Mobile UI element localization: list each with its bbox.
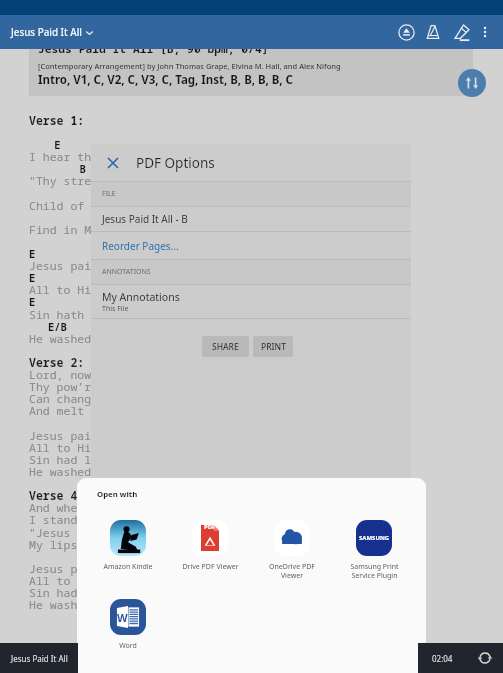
button[interactable]: Metronome <box>421 20 445 44</box>
staticText: And melt the heart of stone. <box>29 403 223 419</box>
staticText: Sin had left a crimson stain, <box>29 452 230 468</box>
staticText: Jesus paid it all, <box>29 561 154 577</box>
staticText: Intro, V1, C, V2, C, V3, C, Tag, Inst, B… <box>38 72 293 88</box>
staticText: Find in Me thine all in all." <box>29 222 230 238</box>
staticText: SAMSUNG <box>359 534 390 542</box>
button[interactable]: Jesus Paid It All <box>0 643 78 673</box>
staticText: PDF Options <box>136 154 215 172</box>
staticText: Jesus paid it all, <box>29 258 154 274</box>
staticText: I stand in Him complete, <box>29 512 195 528</box>
button[interactable]: PRINT <box>253 336 293 357</box>
staticText: Child of weakness, watch and pray, <box>29 198 264 214</box>
staticText: [Contemporary Arrangement] by John Thoma… <box>38 61 341 71</box>
staticText: Verse 4: <box>29 488 85 504</box>
button[interactable]: Capo <box>394 20 418 44</box>
staticText: Verse 2: <box>29 355 85 371</box>
staticText: He washed it white as snow. <box>29 331 216 347</box>
staticText: Word <box>119 641 137 651</box>
staticText: 02:04 <box>432 653 453 664</box>
staticText: I hear the Savior say, <box>29 149 181 165</box>
staticText: FILE <box>102 189 116 199</box>
staticText: Jesus Paid It All <box>11 653 68 664</box>
staticText: Can change the leper’s spots <box>29 391 223 407</box>
staticText: This File <box>102 304 129 314</box>
staticText: OneDrive PDF Viewer <box>269 562 315 580</box>
staticText: Jesus Paid It All - B <box>102 212 188 226</box>
button[interactable]: Jesus Paid It All <box>8 20 97 45</box>
staticText: E/B <box>29 320 67 334</box>
staticText: ANNOTATIONS <box>102 267 151 277</box>
staticText: My lips shall still repeat. <box>29 537 216 553</box>
button[interactable]: My Annotations <box>91 285 411 318</box>
staticText: PRINT <box>261 341 286 353</box>
button[interactable]: Close <box>102 152 124 174</box>
button[interactable]: PDF <box>169 520 251 572</box>
staticText: W <box>117 610 128 625</box>
button[interactable]: SAMSUNG <box>333 520 415 580</box>
staticText: All to Him I owe; <box>29 573 147 589</box>
staticText: Drive PDF Viewer <box>182 562 239 572</box>
staticText: E <box>29 271 36 285</box>
button[interactable]: Scroll up or down <box>458 69 486 97</box>
button[interactable]: Amazon Kindle <box>87 520 169 572</box>
staticText: Samsung Print Service Plugin <box>350 562 399 580</box>
button[interactable]: More options <box>473 20 497 44</box>
button[interactable]: W <box>87 599 169 651</box>
staticText: SHARE <box>212 341 239 353</box>
button[interactable]: Jesus Paid It All - B <box>91 207 411 231</box>
staticText: E <box>29 295 36 309</box>
staticText: He washed it white as snow. <box>29 597 216 613</box>
staticText: E <box>29 247 36 261</box>
staticText: And when before the throne <box>29 500 209 516</box>
staticText: "Thy strength indeed is small, <box>29 173 236 189</box>
staticText: Open with <box>97 489 138 500</box>
button[interactable]: OneDrive PDF Viewer <box>251 520 333 580</box>
staticText: Verse 1: <box>29 113 85 129</box>
button[interactable]: Reorder Pages... <box>91 232 411 259</box>
staticText: Amazon Kindle <box>103 562 153 572</box>
staticText: Jesus paid it all, <box>29 428 154 444</box>
staticText: E <box>29 186 118 200</box>
staticText: Jesus Paid It All <box>11 26 82 39</box>
staticText: He washed it white as snow. <box>29 464 216 480</box>
staticText: Sin hath left a crimson stain, <box>29 307 236 323</box>
staticText: My Annotations <box>102 290 180 304</box>
staticText: B <box>29 162 86 176</box>
staticText: All to Him I owe; <box>29 282 147 298</box>
staticText: PDF <box>204 523 216 531</box>
staticText: "Jesus died my soul to save," <box>29 525 230 541</box>
button[interactable]: Loop <box>475 648 495 668</box>
staticText: Lord, now indeed I find <box>29 367 188 383</box>
button[interactable]: SHARE <box>202 336 249 357</box>
staticText: Sin had left a crimson stain, <box>29 585 230 601</box>
staticText: Reorder Pages... <box>102 239 179 253</box>
staticText: Thy pow’r, and Thine alone, <box>29 379 216 395</box>
staticText: All to Him I owe; <box>29 440 147 456</box>
staticText: Jesus Paid It All [B, 90 bpm, 0/4] <box>38 41 269 56</box>
staticText: E <box>29 138 61 152</box>
button[interactable]: Highlighter <box>449 20 473 44</box>
